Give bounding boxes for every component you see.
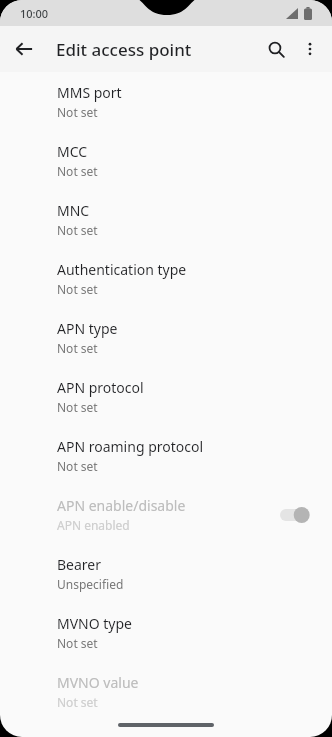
- staticText: Not set: [57, 281, 98, 297]
- staticText: Not set: [57, 635, 98, 651]
- staticText: APN roaming protocol: [57, 437, 204, 456]
- staticText: Not set: [57, 399, 98, 415]
- button[interactable]: Bearer: [0, 544, 332, 603]
- button[interactable]: APN enable/disable: [0, 485, 332, 544]
- button[interactable]: APN roaming protocol: [0, 426, 332, 485]
- staticText: APN type: [57, 319, 118, 338]
- staticText: APN enable/disable: [57, 496, 186, 515]
- button[interactable]: Search: [259, 32, 293, 66]
- staticText: APN enabled: [57, 517, 130, 533]
- staticText: Not set: [57, 458, 98, 474]
- staticText: MVNO type: [57, 614, 133, 633]
- staticText: APN protocol: [57, 378, 144, 397]
- staticText: MVNO value: [57, 673, 139, 692]
- button[interactable]: MCC: [0, 131, 332, 190]
- staticText: 10:00: [20, 6, 49, 21]
- staticText: MMS port: [57, 83, 122, 102]
- staticText: Authentication type: [57, 260, 187, 279]
- button[interactable]: Back: [8, 33, 40, 65]
- button[interactable]: MMS port: [0, 72, 332, 131]
- staticText: Not set: [57, 340, 98, 356]
- button[interactable]: Authentication type: [0, 249, 332, 308]
- button[interactable]: APN type: [0, 308, 332, 367]
- staticText: MNC: [57, 201, 90, 220]
- staticText: Not set: [57, 694, 98, 710]
- button[interactable]: More options: [293, 32, 327, 66]
- staticText: Not set: [57, 222, 98, 238]
- staticText: Not set: [57, 163, 98, 179]
- staticText: Edit access point: [56, 38, 192, 61]
- button[interactable]: APN protocol: [0, 367, 332, 426]
- button[interactable]: MVNO value: [0, 662, 332, 721]
- staticText: Unspecified: [57, 576, 124, 592]
- staticText: Not set: [57, 104, 98, 120]
- button[interactable]: MNC: [0, 190, 332, 249]
- button[interactable]: MVNO type: [0, 603, 332, 662]
- staticText: MCC: [57, 142, 88, 161]
- staticText: Bearer: [57, 555, 102, 574]
